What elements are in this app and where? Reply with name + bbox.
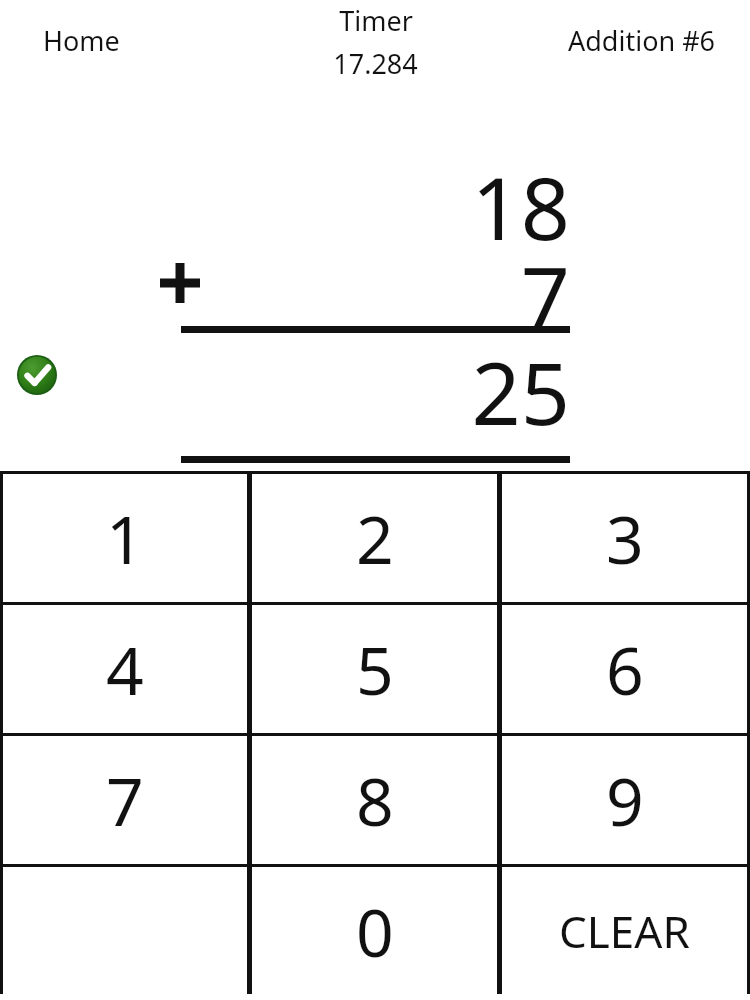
staticText: 4 xyxy=(106,624,144,714)
staticText: 6 xyxy=(606,624,644,714)
button[interactable]: 6 xyxy=(502,605,747,733)
button[interactable]: 9 xyxy=(502,736,747,864)
staticText: 5 xyxy=(356,624,394,714)
staticText: 1 xyxy=(106,493,144,583)
button[interactable]: 0 xyxy=(252,867,497,994)
button[interactable]: Addition #6 xyxy=(566,20,718,61)
button[interactable]: 7 xyxy=(3,736,247,864)
button[interactable]: 5 xyxy=(252,605,497,733)
staticText: 7 xyxy=(106,755,144,845)
staticText: Addition #6 xyxy=(568,22,716,59)
button[interactable]: 1 xyxy=(3,474,247,602)
button[interactable]: CLEAR xyxy=(502,867,747,994)
staticText: 17.284 xyxy=(333,45,418,82)
staticText: Home xyxy=(43,22,120,59)
staticText: 9 xyxy=(606,755,644,845)
staticText: 8 xyxy=(356,755,394,845)
staticText: 2 xyxy=(356,493,394,583)
other: Correct answer xyxy=(17,355,57,395)
button[interactable]: Home xyxy=(41,20,122,61)
button[interactable]: Timer xyxy=(333,2,418,82)
button[interactable]: 3 xyxy=(502,474,747,602)
staticText: 18 xyxy=(471,148,570,265)
button[interactable]: 4 xyxy=(3,605,247,733)
staticText: CLEAR xyxy=(559,901,690,961)
staticText: 3 xyxy=(606,493,644,583)
button[interactable]: 2 xyxy=(252,474,497,602)
staticText: Timer xyxy=(339,2,413,39)
staticText: 25 xyxy=(471,333,570,450)
button[interactable]: 8 xyxy=(252,736,497,864)
staticText: 0 xyxy=(356,886,394,976)
staticText: 7 xyxy=(520,238,570,355)
